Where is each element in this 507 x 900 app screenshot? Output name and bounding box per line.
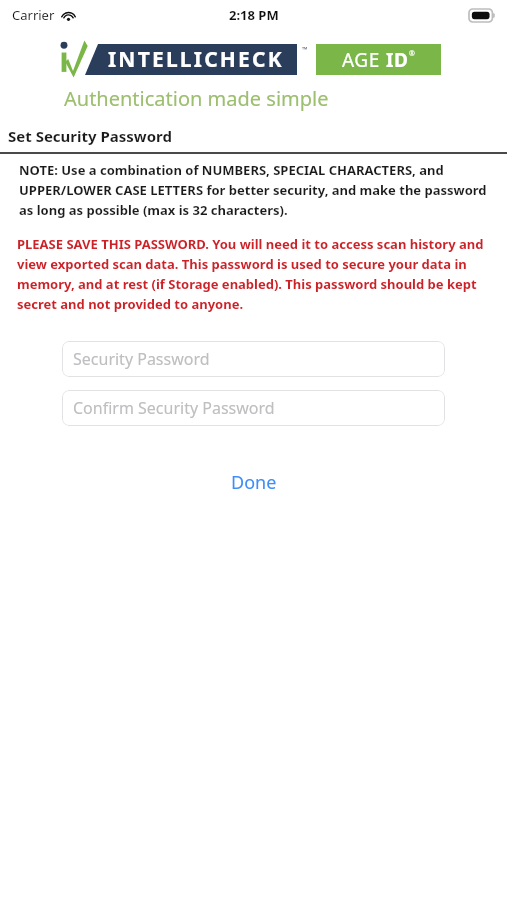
staticText: Set Security Password bbox=[8, 126, 172, 146]
staticText: Authentication made simple bbox=[64, 85, 329, 112]
staticText: NOTE: Use a combination of NUMBERS, SPEC… bbox=[19, 161, 491, 219]
staticText: 2:18 PM bbox=[229, 6, 279, 24]
staticText: AGE bbox=[342, 47, 386, 73]
button[interactable]: Done bbox=[209, 464, 299, 501]
staticText: ® bbox=[409, 49, 415, 59]
staticText: Carrier bbox=[12, 6, 55, 24]
staticText: Done bbox=[231, 470, 277, 495]
staticText: ™ bbox=[302, 45, 308, 55]
staticText: ID bbox=[386, 47, 409, 73]
button[interactable]: Security Password bbox=[62, 341, 445, 377]
staticText: Confirm Security Password bbox=[73, 397, 275, 419]
button[interactable]: Confirm Security Password bbox=[62, 390, 445, 426]
staticText: INTELLICHECK bbox=[108, 45, 284, 74]
staticText: PLEASE SAVE THIS PASSWORD. You will need… bbox=[17, 235, 495, 313]
staticText: Security Password bbox=[73, 348, 210, 370]
